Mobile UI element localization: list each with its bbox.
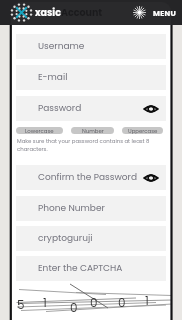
staticText: 5	[17, 296, 25, 313]
button[interactable]: Number	[71, 127, 114, 134]
button[interactable]: Uppercase	[122, 127, 163, 134]
button[interactable]: Username	[16, 34, 166, 59]
staticText: Password	[38, 102, 82, 115]
button[interactable]: Phone Number	[16, 196, 166, 221]
staticText: 0	[118, 294, 126, 311]
staticText: E-mail	[38, 71, 68, 84]
staticText: Make sure that your password contains at…	[17, 137, 166, 152]
staticText: 0	[90, 294, 98, 311]
button[interactable]: Show password	[143, 172, 159, 184]
button[interactable]: Lowercase	[16, 127, 63, 134]
staticText: Enter the CAPTCHA	[38, 262, 123, 275]
button[interactable]: xasic	[0, 3, 103, 22]
button[interactable]: Show password	[143, 103, 159, 115]
button[interactable]: E-mail	[16, 65, 166, 90]
staticText: Lowercase	[25, 127, 54, 134]
staticText: 1	[43, 294, 47, 311]
button[interactable]: Enter the CAPTCHA	[16, 256, 166, 281]
button[interactable]: MENU	[133, 6, 182, 19]
staticText: Phone Number	[38, 202, 105, 215]
button[interactable]: Confirm the Password	[16, 165, 166, 190]
staticText: MENU	[153, 8, 177, 18]
button[interactable]: Password	[16, 96, 166, 121]
staticText: Uppercase	[128, 127, 158, 134]
staticText: Username	[38, 40, 85, 53]
staticText: Account	[61, 6, 103, 19]
staticText: cryptoguruji	[38, 232, 93, 245]
staticText: xasic	[35, 6, 61, 19]
staticText: Confirm the Password	[38, 171, 137, 184]
staticText: 1	[145, 292, 149, 309]
button[interactable]: cryptoguruji	[16, 226, 166, 251]
staticText: Number	[82, 127, 104, 134]
staticText: 0	[70, 299, 78, 316]
